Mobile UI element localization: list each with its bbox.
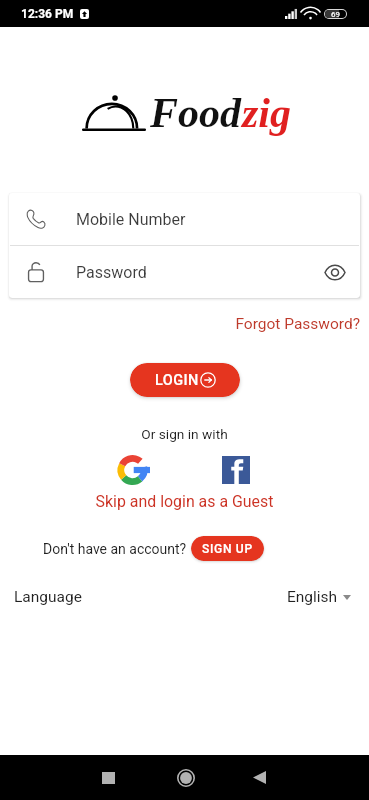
staticText: 12:36 PM [21, 7, 74, 21]
staticText: Skip and login as a Guest [0, 492, 369, 511]
button[interactable]: Show password [315, 252, 355, 292]
staticText: Or sign in with [0, 426, 369, 442]
staticText: Don't have an account? [43, 541, 187, 557]
button[interactable]: Home [163, 755, 208, 800]
button[interactable]: Language [14, 588, 82, 606]
staticText: 69 [331, 10, 340, 18]
button[interactable]: English [287, 588, 351, 606]
button[interactable]: Sign in with Facebook [217, 451, 255, 489]
button[interactable]: Recent apps [86, 755, 131, 800]
staticText: zig [242, 90, 292, 137]
button[interactable]: Mobile Number [9, 193, 360, 245]
button[interactable]: SIGN UP [191, 536, 264, 561]
staticText: English [287, 588, 338, 606]
staticText: SIGN UP [202, 542, 253, 556]
button[interactable]: Back [237, 755, 282, 800]
button[interactable]: Sign in with Google [113, 451, 155, 489]
staticText: Forgot Password? [0, 315, 360, 333]
staticText: Password [76, 263, 147, 282]
button[interactable]: Password [9, 246, 360, 298]
staticText: Food [150, 90, 242, 137]
staticText: LOGIN [155, 372, 199, 389]
staticText: Mobile Number [76, 210, 186, 229]
button[interactable]: LOGIN [130, 363, 240, 397]
